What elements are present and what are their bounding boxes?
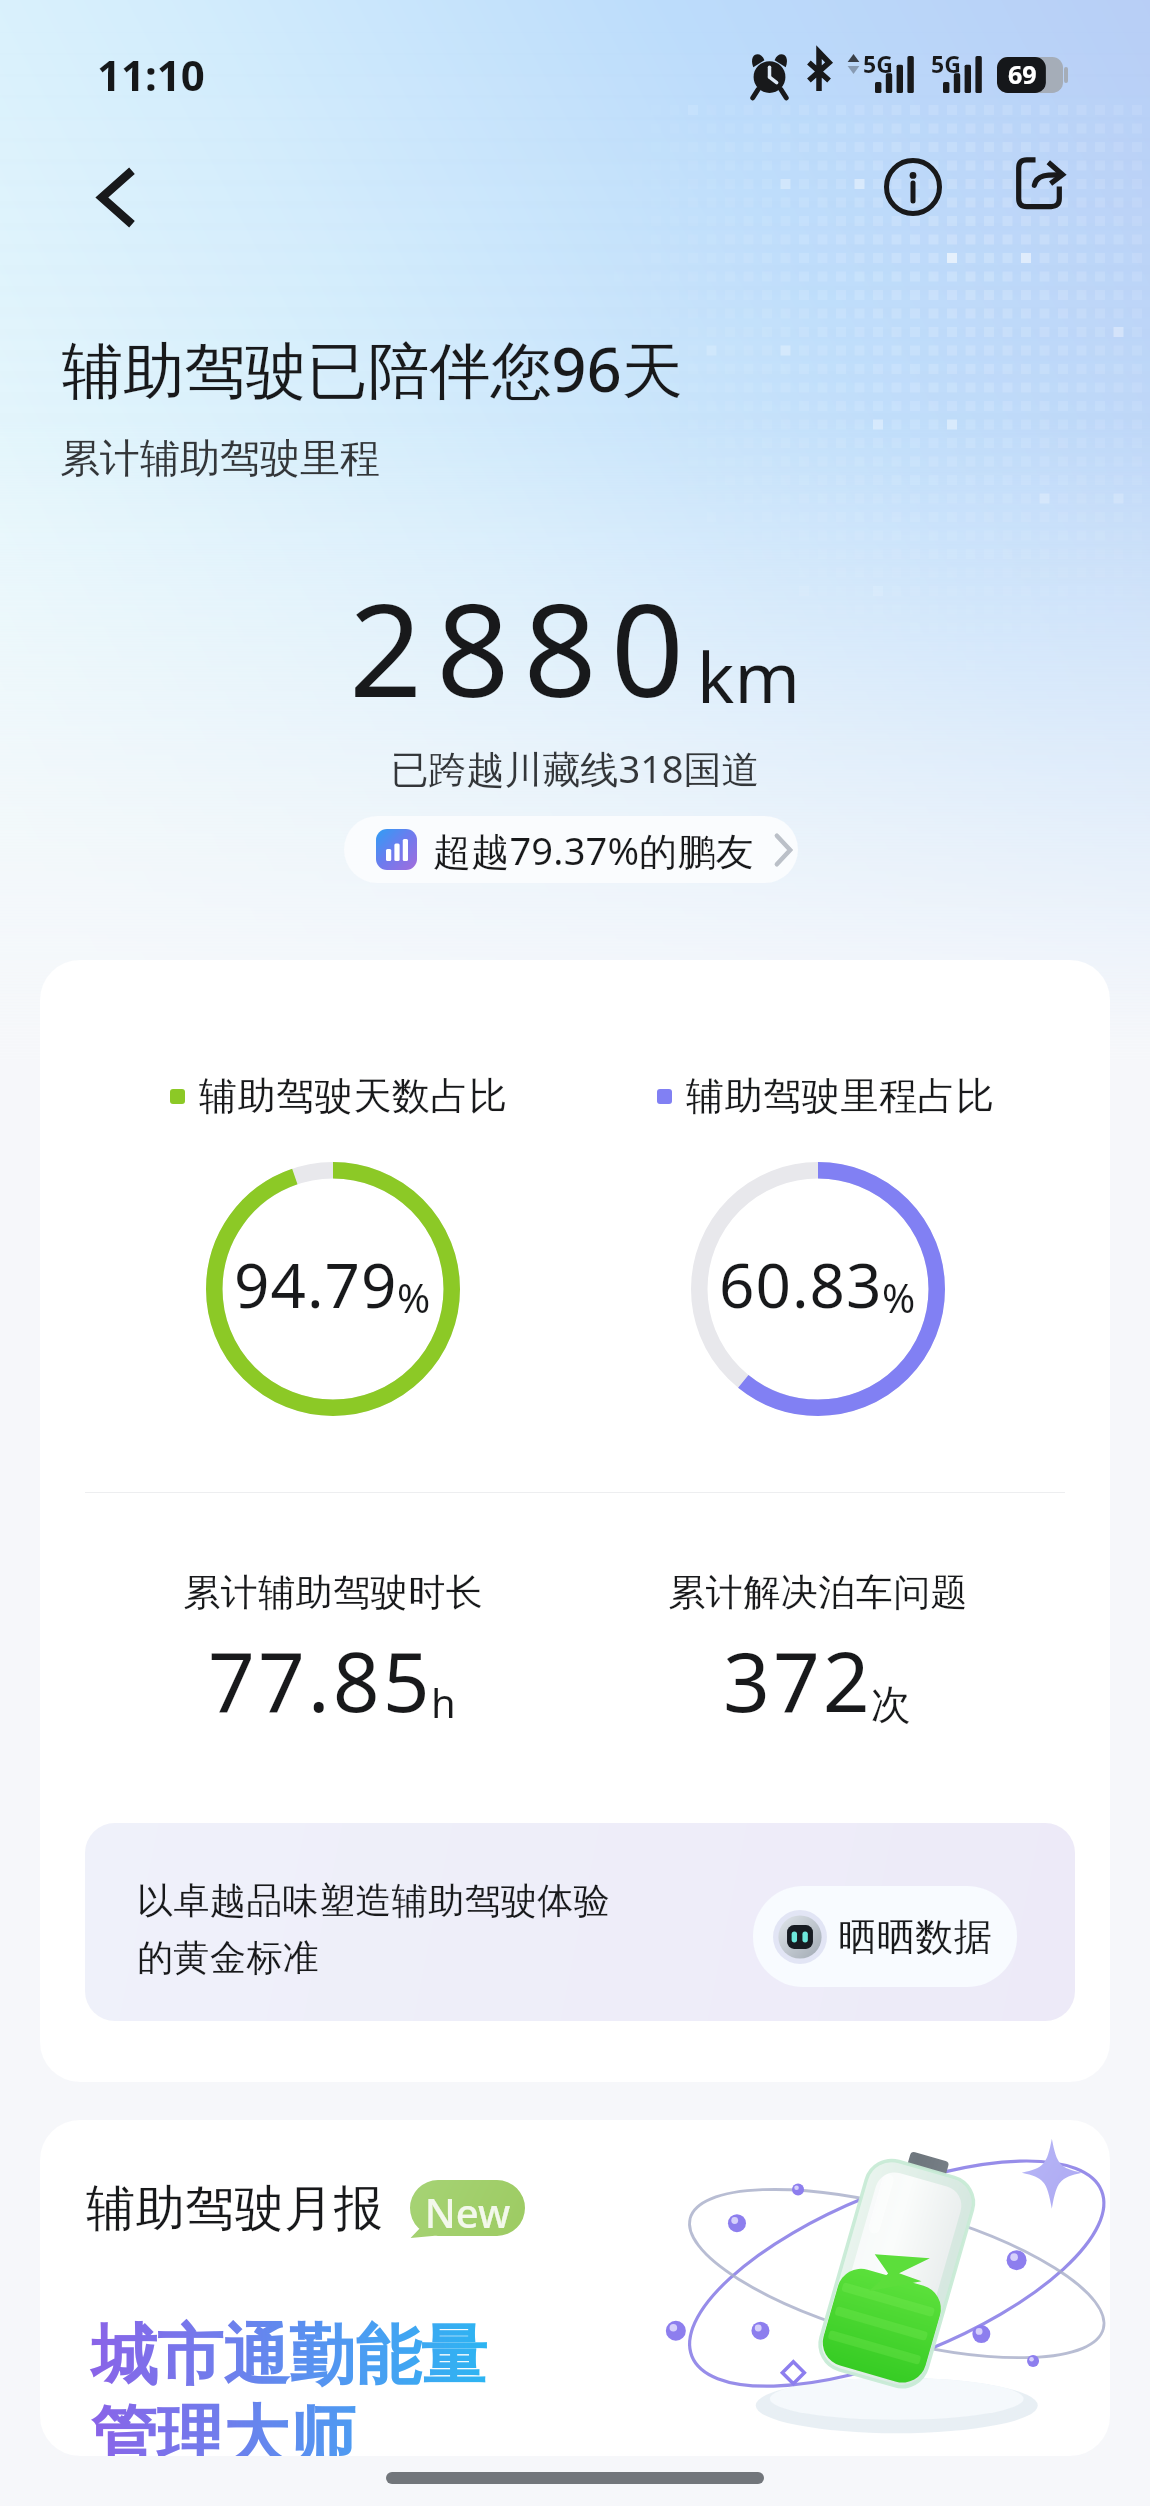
staticText: 的黄金标准 [137,1935,319,1980]
staticText: 5G [863,48,893,79]
staticText: 辅助驾驶月报 [86,2178,383,2240]
staticText: h [431,1675,456,1729]
staticText: 次 [871,1679,911,1729]
staticText: 11:10 [97,46,205,103]
button[interactable]: Back [67,149,163,245]
staticText: 5G [931,48,961,79]
staticText: 累计辅助驾驶时长 [183,1569,483,1616]
staticText: % [882,1270,916,1324]
button[interactable]: Info [865,139,961,235]
staticText: 已跨越川藏线318国道 [0,742,1150,794]
staticText: 69 [1008,57,1037,91]
staticText: 累计解决泊车问题 [668,1569,968,1616]
button[interactable]: 超越79.37%的鹏友 [344,816,798,883]
staticText: 77.85 [208,1624,433,1736]
button[interactable]: Share [991,138,1087,234]
staticText: 超越79.37%的鹏友 [433,824,754,876]
staticText: % [397,1270,431,1324]
staticText: 94.79 [234,1242,398,1326]
staticText: 372 [723,1624,873,1736]
staticText: 辅助驾驶已陪伴您96天 [62,327,683,410]
staticText: 辅助驾驶天数占比 [199,1072,508,1120]
staticText: 60.83 [719,1242,883,1326]
staticText: 以卓越品味塑造辅助驾驶体验 [137,1878,611,1923]
button[interactable]: 晒晒数据 [753,1886,1017,1987]
staticText: 2880 [349,560,698,734]
staticText: 累计辅助驾驶里程 [60,433,380,483]
staticText: 晒晒数据 [838,1913,992,1961]
staticText: km [697,628,800,723]
staticText: New [410,2185,525,2239]
staticText: 城市通勤能量 管理大师 [91,2314,487,2456]
staticText: 辅助驾驶里程占比 [686,1072,995,1120]
